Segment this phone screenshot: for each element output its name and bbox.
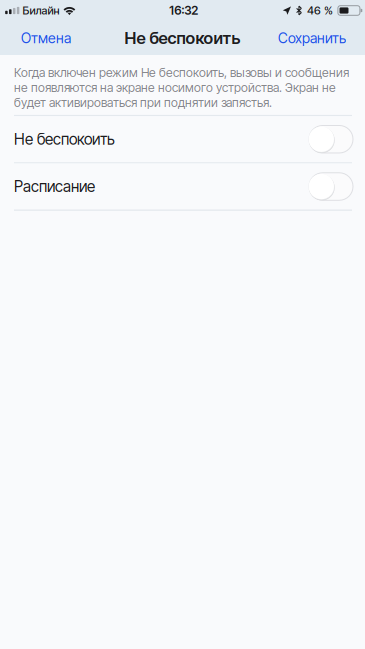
staticText: Расписание <box>14 177 95 196</box>
button[interactable]: Сохранить <box>269 22 355 53</box>
staticText: Отмена <box>21 29 71 46</box>
staticText: 46 % <box>307 4 333 17</box>
staticText: не появляются на экране носимого устройс… <box>14 80 336 95</box>
staticText: 16:32 <box>169 3 198 18</box>
staticText: Не беспокоить <box>124 28 240 48</box>
staticText: будет активироваться при поднятии запяст… <box>14 95 272 110</box>
staticText: Когда включен режим Не беспокоить, вызов… <box>14 65 349 80</box>
button[interactable]: Расписание <box>0 163 365 209</box>
staticText: Билайн <box>22 4 59 17</box>
staticText: Не беспокоить <box>14 130 115 148</box>
button[interactable]: Не беспокоить <box>0 116 365 162</box>
staticText: Сохранить <box>278 29 346 46</box>
button[interactable]: Отмена <box>12 22 80 53</box>
